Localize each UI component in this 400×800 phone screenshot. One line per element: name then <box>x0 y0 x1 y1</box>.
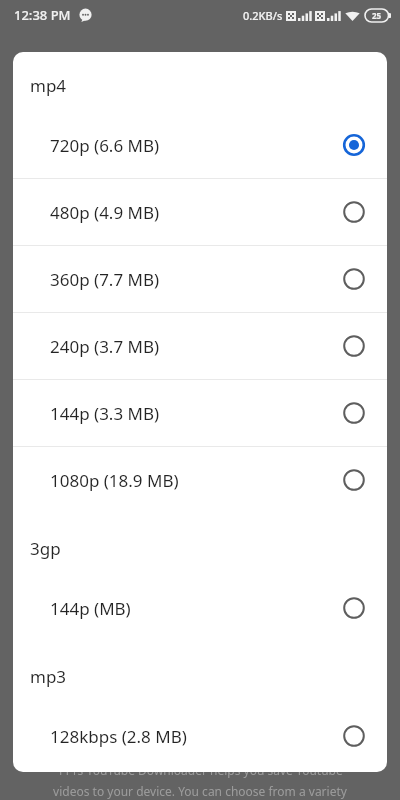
other: Select option <box>343 335 365 357</box>
staticText: 144p (MB) <box>50 597 131 620</box>
other: Select option <box>343 201 365 223</box>
staticText: videos to your device. You can choose fr… <box>53 783 347 799</box>
other: Selected option <box>343 134 365 156</box>
other: Select option <box>343 725 365 747</box>
staticText: 720p (6.6 MB) <box>50 134 160 157</box>
other: Select option <box>343 469 365 491</box>
button[interactable]: 128kbps (2.8 MB) <box>13 703 387 769</box>
staticText: 480p (4.9 MB) <box>50 201 160 224</box>
staticText: 128kbps (2.8 MB) <box>50 725 187 748</box>
staticText: 360p (7.7 MB) <box>50 268 160 291</box>
staticText: 25 <box>372 10 382 21</box>
staticText: 0.2KB/s <box>243 8 283 23</box>
staticText: 144p (3.3 MB) <box>50 402 160 425</box>
staticText: 3gp <box>30 537 61 560</box>
other: Select option <box>343 402 365 424</box>
staticText: 240p (3.7 MB) <box>50 335 160 358</box>
other: Battery 25% <box>365 9 391 22</box>
staticText: 12:38 PM <box>14 6 71 24</box>
other: Select option <box>343 268 365 290</box>
button[interactable]: 144p (MB) <box>13 575 387 641</box>
other: Select option <box>343 597 365 619</box>
button[interactable]: 144p (3.3 MB) <box>13 380 387 446</box>
staticText: mp3 <box>30 665 67 688</box>
staticText: mp4 <box>30 74 67 97</box>
button[interactable]: 240p (3.7 MB) <box>13 313 387 379</box>
button[interactable]: 720p (6.6 MB) <box>13 112 387 178</box>
button[interactable]: 480p (4.9 MB) <box>13 179 387 245</box>
staticText: YT1s YouTube Downloader helps you save Y… <box>57 762 343 778</box>
button[interactable]: 1080p (18.9 MB) <box>13 447 387 513</box>
button[interactable]: 360p (7.7 MB) <box>13 246 387 312</box>
other: Messages <box>79 9 92 22</box>
staticText: 1080p (18.9 MB) <box>50 469 179 492</box>
other: Wi-Fi <box>345 10 360 21</box>
